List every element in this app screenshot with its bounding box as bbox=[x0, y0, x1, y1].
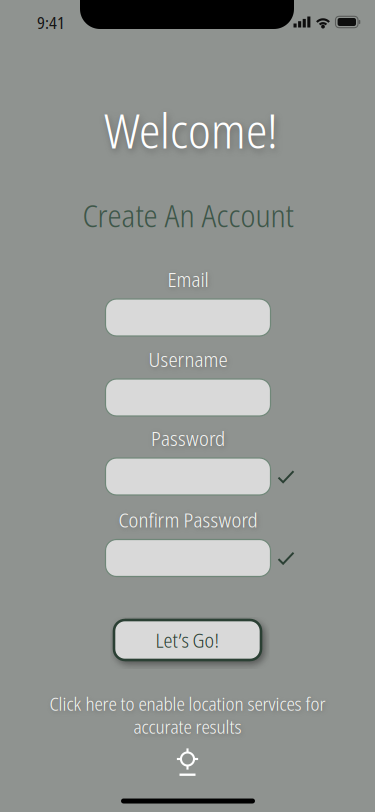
button[interactable] bbox=[105, 299, 270, 336]
staticText: Click here to enable location services f… bbox=[49, 691, 325, 716]
staticText: Password bbox=[151, 424, 225, 452]
staticText: Let’s Go! bbox=[155, 626, 219, 654]
button[interactable] bbox=[105, 379, 270, 416]
button[interactable]: Let’s Go! bbox=[114, 620, 261, 660]
staticText: Create An Account bbox=[82, 193, 293, 236]
staticText: accurate results bbox=[133, 714, 241, 739]
staticText: Confirm Password bbox=[118, 505, 257, 533]
staticText: 9:41 bbox=[37, 11, 65, 34]
staticText: Welcome! bbox=[104, 97, 278, 163]
button[interactable] bbox=[105, 539, 270, 576]
button[interactable]: Click here to enable location services f… bbox=[15, 687, 360, 783]
staticText: Email bbox=[167, 265, 208, 293]
staticText: Username bbox=[148, 345, 227, 373]
button[interactable] bbox=[105, 458, 270, 495]
